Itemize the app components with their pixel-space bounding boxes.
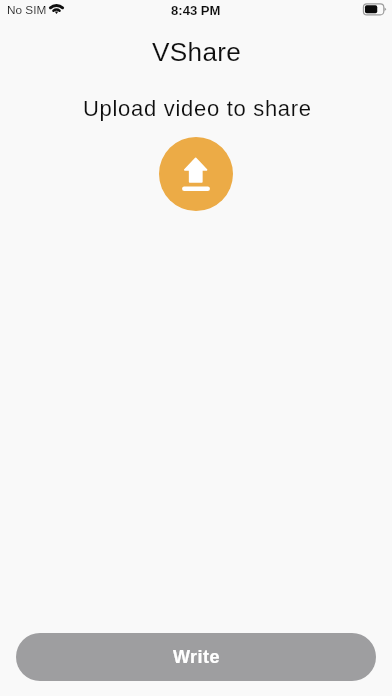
button[interactable]: Write <box>16 633 376 681</box>
staticText: Write <box>173 647 220 667</box>
button[interactable]: Upload video <box>159 137 233 211</box>
staticText: VShare <box>152 37 242 66</box>
staticText: 8:43 PM <box>171 3 221 18</box>
staticText: No SIM <box>7 3 47 16</box>
staticText: Upload video to share <box>83 96 312 121</box>
